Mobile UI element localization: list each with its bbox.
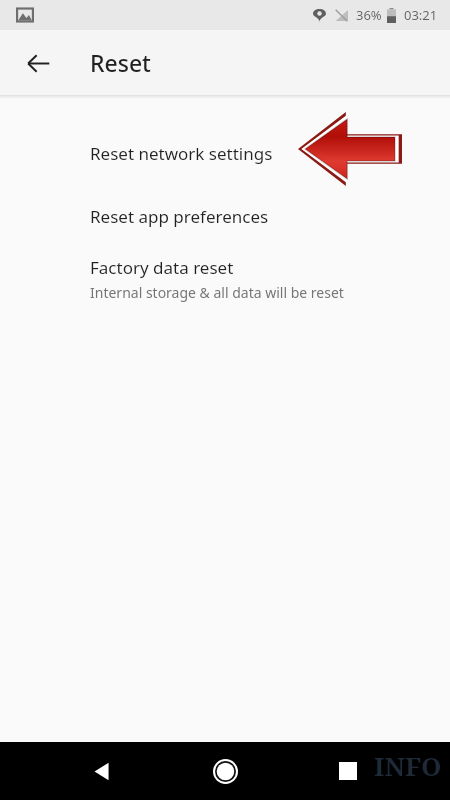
button[interactable]: Home: [201, 747, 249, 795]
staticText: 03:21: [404, 6, 438, 24]
staticText: HARDRESET: [42, 671, 408, 750]
button[interactable]: Back: [78, 747, 126, 795]
button[interactable]: Factory data reset: [0, 248, 450, 320]
staticText: Factory data reset: [90, 256, 234, 279]
staticText: INFO: [374, 748, 442, 783]
staticText: Reset network settings: [90, 142, 273, 165]
staticText: 36%: [356, 6, 382, 24]
button[interactable]: Reset app preferences: [0, 184, 450, 248]
staticText: Reset: [90, 47, 151, 78]
button[interactable]: Recent apps: [324, 747, 372, 795]
button[interactable]: Reset network settings: [0, 123, 450, 184]
button[interactable]: Back: [14, 39, 62, 87]
staticText: Reset app preferences: [90, 205, 269, 228]
staticText: Internal storage & all data will be rese…: [90, 283, 344, 302]
